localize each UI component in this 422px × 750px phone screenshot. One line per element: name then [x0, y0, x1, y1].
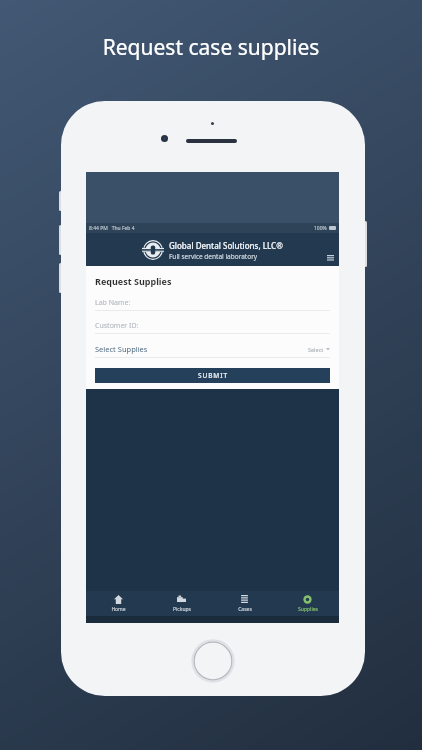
staticText: Request case supplies	[0, 33, 422, 62]
staticText: 100%	[314, 225, 327, 232]
staticText: SUBMIT	[198, 371, 228, 380]
button[interactable]: Supplies	[276, 591, 339, 616]
staticText: Global Dental Solutions, LLC®	[169, 240, 283, 251]
button[interactable]: Home	[86, 591, 150, 616]
staticText: Lab Name:	[95, 298, 131, 308]
staticText: Supplies	[298, 606, 318, 613]
staticText: Customer ID:	[95, 321, 139, 331]
staticText: Home	[111, 606, 126, 613]
button[interactable]: SUBMIT	[95, 368, 330, 383]
staticText: Request Supplies	[95, 275, 172, 287]
staticText: 8:44 PM Thu Feb 4	[89, 225, 135, 232]
button[interactable]: Customer ID:	[95, 318, 330, 333]
button[interactable]: Menu	[324, 252, 336, 264]
button[interactable]: Lab Name:	[95, 295, 330, 310]
button[interactable]: Pickups	[150, 591, 213, 616]
staticText: Select	[308, 346, 324, 353]
button[interactable]: Cases	[213, 591, 276, 616]
staticText: Pickups	[173, 606, 191, 613]
staticText: Select Supplies	[95, 344, 148, 354]
button[interactable]: Select Supplies	[95, 341, 330, 357]
staticText: Full service dental laboratory	[169, 252, 258, 261]
staticText: Cases	[238, 606, 252, 613]
